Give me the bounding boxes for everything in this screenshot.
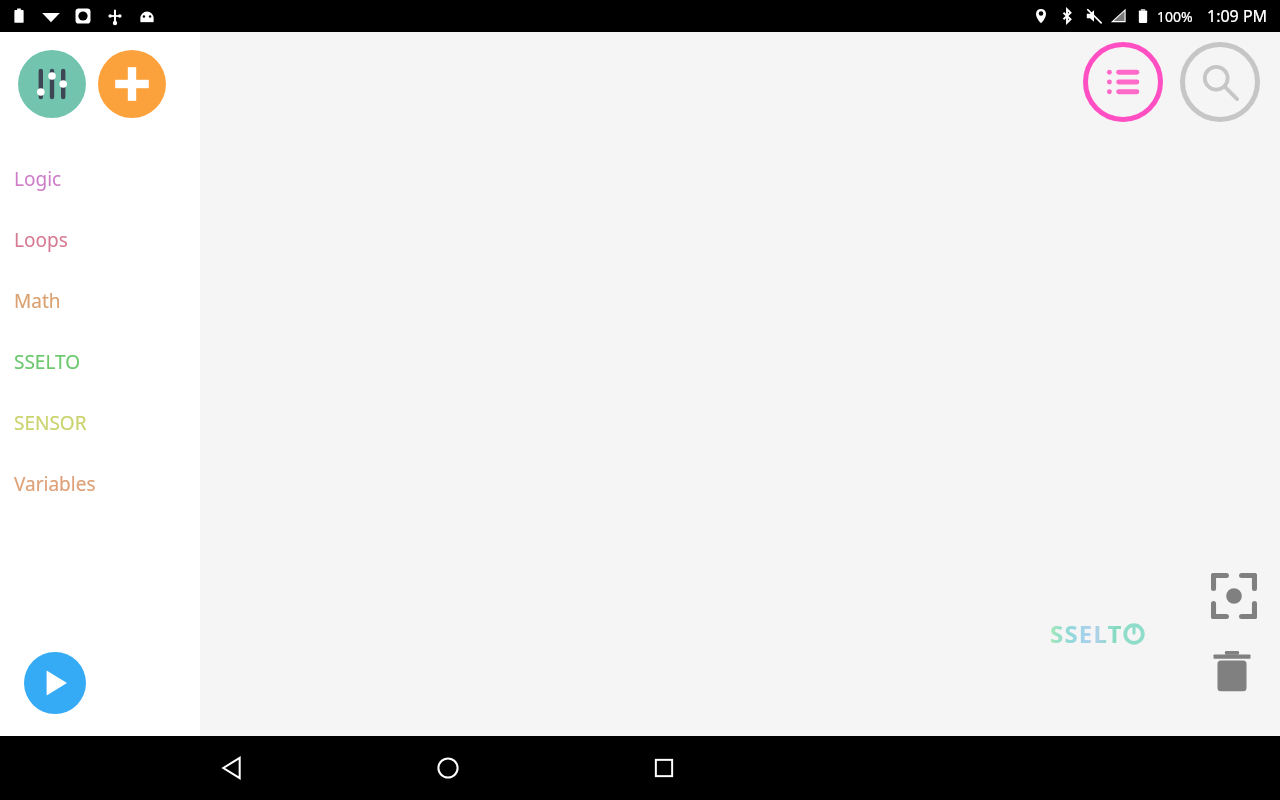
staticText: Loops [14,227,68,253]
button[interactable]: Loops [0,209,200,270]
staticText: Logic [14,166,62,192]
button[interactable]: Settings sliders [18,50,86,118]
button[interactable]: Block list [1083,42,1163,122]
staticText: Math [14,288,61,314]
button[interactable]: Add block [98,50,166,118]
button[interactable]: Variables [0,453,200,514]
staticText: 1:09 PM [1207,5,1268,27]
staticText: SSELT [1050,617,1123,650]
staticText: SSELTO [14,349,81,375]
button[interactable]: Back [200,736,264,800]
button[interactable]: Home [416,736,480,800]
button[interactable]: SENSOR [0,392,200,453]
button[interactable]: Recents [632,736,696,800]
staticText: SENSOR [14,410,87,436]
button[interactable]: Math [0,270,200,331]
button[interactable]: Run [24,652,86,714]
button[interactable]: Logic [0,148,200,209]
staticText: Variables [14,471,96,497]
button[interactable]: Delete [1202,642,1262,702]
button[interactable]: SSELTO [0,331,200,392]
button[interactable]: Center workspace [1206,568,1262,624]
button[interactable]: Search [1180,42,1260,122]
staticText: 100% [1157,7,1193,26]
